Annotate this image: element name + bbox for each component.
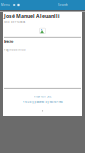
staticText: View Full Site <box>34 95 51 98</box>
staticText: Search <box>58 3 68 7</box>
button[interactable]: Search <box>58 0 85 10</box>
button[interactable]: View Full Site <box>4 95 81 98</box>
button[interactable]: Proudly powered by WordPress <box>4 100 81 104</box>
staticText: Proudly powered by WordPress <box>22 100 62 104</box>
staticText: Sitio de Pruebas <box>4 20 25 24</box>
staticText: Inicio <box>4 39 13 44</box>
button[interactable]: New <box>16 0 21 10</box>
staticText: José Manuel Aleuanlli <box>4 12 60 19</box>
button[interactable]: Comments <box>12 0 16 10</box>
staticText: Menu <box>1 3 10 7</box>
button[interactable]: Menu <box>0 0 12 10</box>
staticText: Página de inicio <box>4 48 26 51</box>
